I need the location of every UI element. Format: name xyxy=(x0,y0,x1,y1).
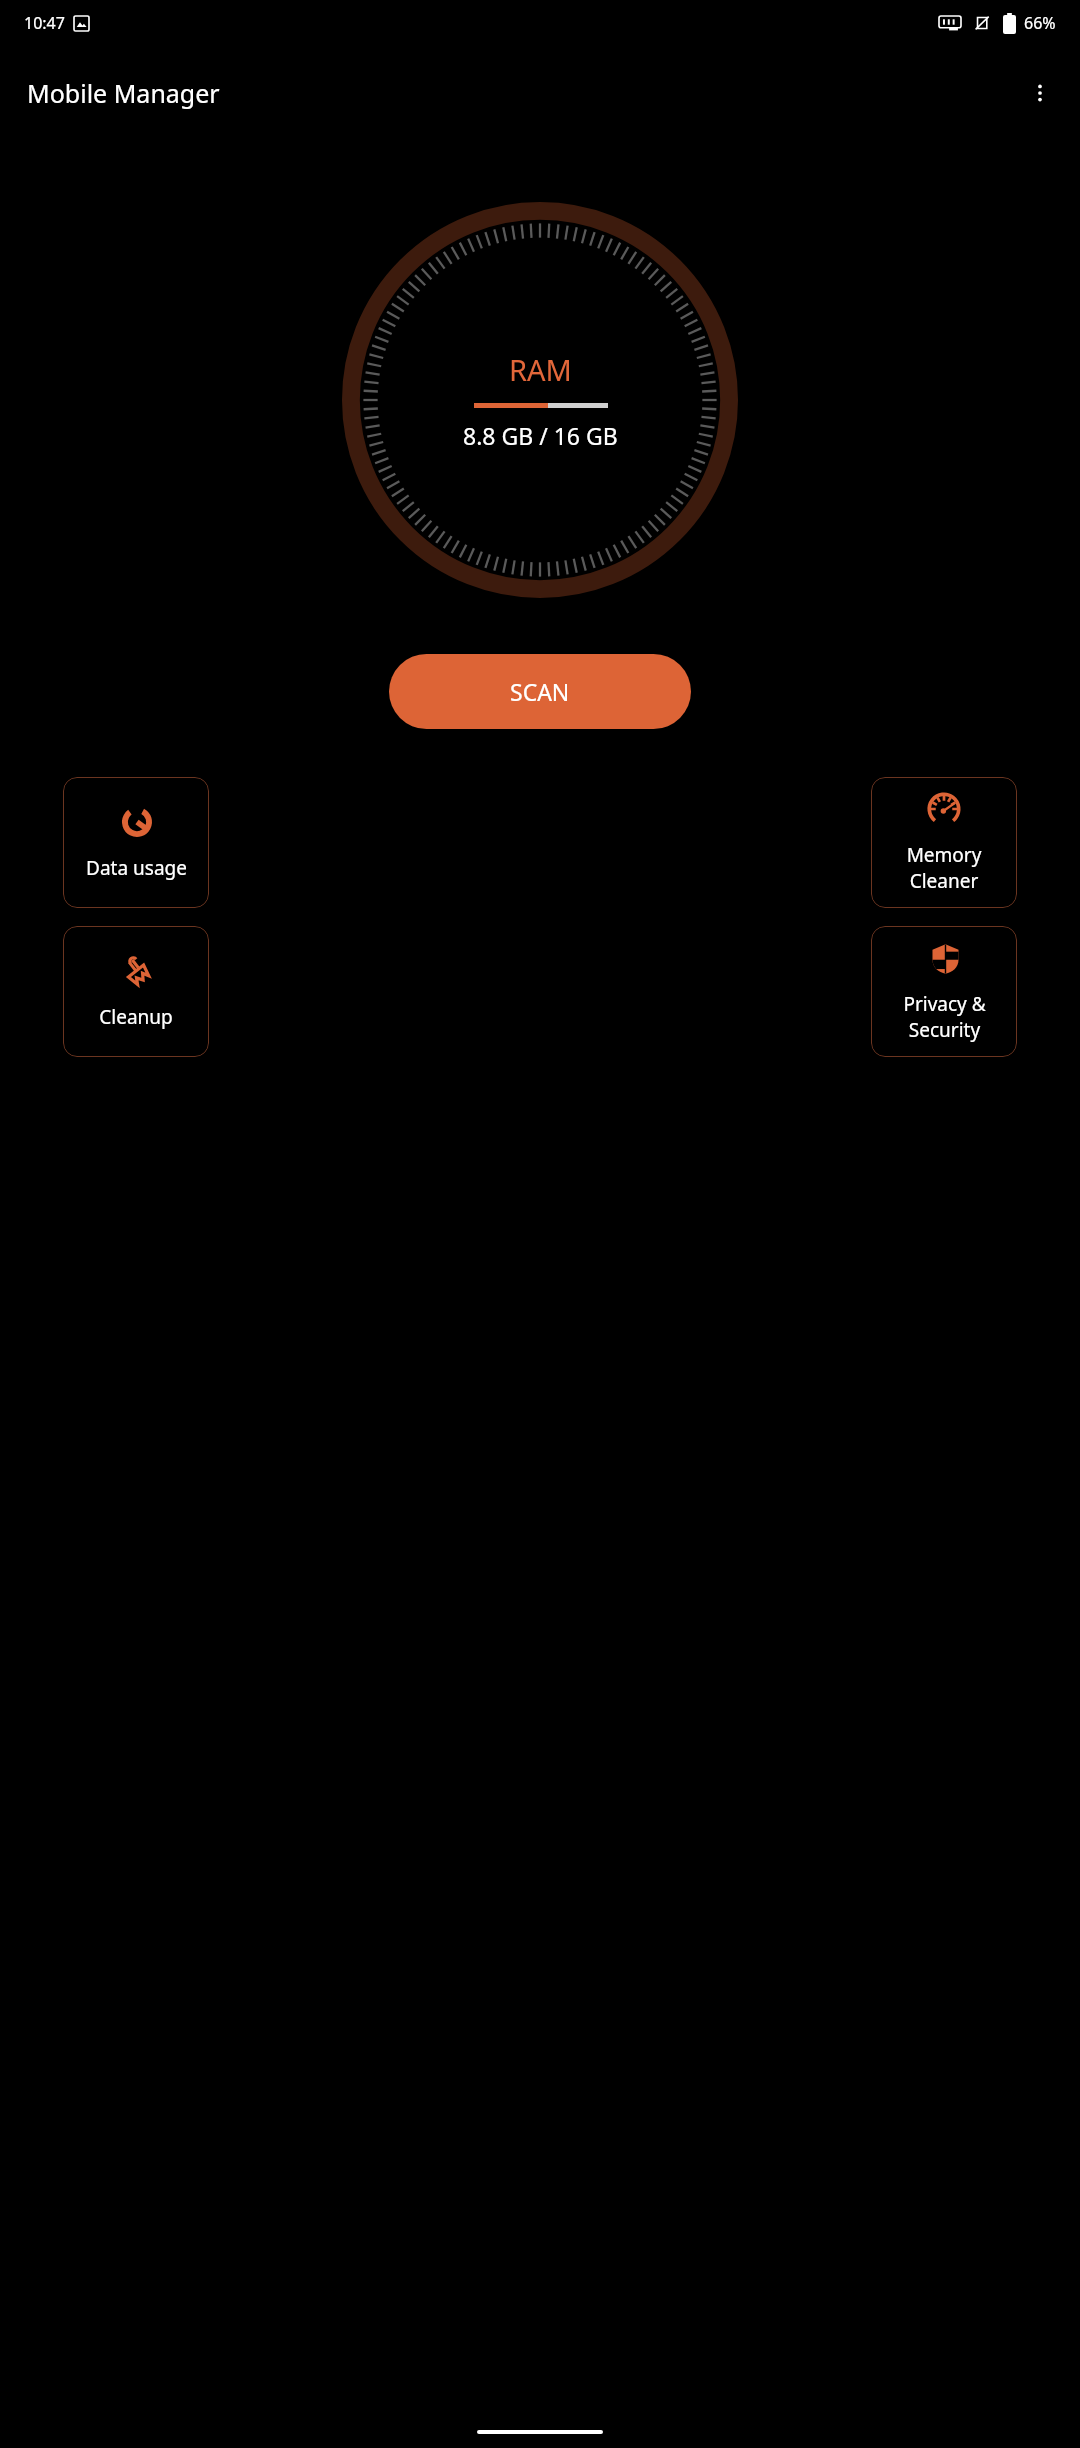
button[interactable]: SCAN xyxy=(389,654,691,729)
staticText: Mobile Manager xyxy=(27,76,220,110)
staticText: 66% xyxy=(1024,12,1056,34)
button[interactable]: More options xyxy=(1016,69,1064,117)
staticText: Data usage xyxy=(86,855,187,881)
staticText: SCAN xyxy=(510,676,570,707)
button[interactable]: Data usage xyxy=(63,777,209,908)
staticText: Privacy & Security xyxy=(903,991,986,1042)
staticText: 10:47 xyxy=(24,12,65,34)
staticText: Cleanup xyxy=(99,1004,173,1030)
button[interactable]: Privacy & Security xyxy=(871,926,1017,1057)
staticText: 8.8 GB / 16 GB xyxy=(463,420,618,451)
button[interactable]: Cleanup xyxy=(63,926,209,1057)
staticText: RAM xyxy=(509,350,572,389)
staticText: Memory Cleaner xyxy=(871,842,1017,893)
button[interactable]: Memory Cleaner xyxy=(871,777,1017,908)
